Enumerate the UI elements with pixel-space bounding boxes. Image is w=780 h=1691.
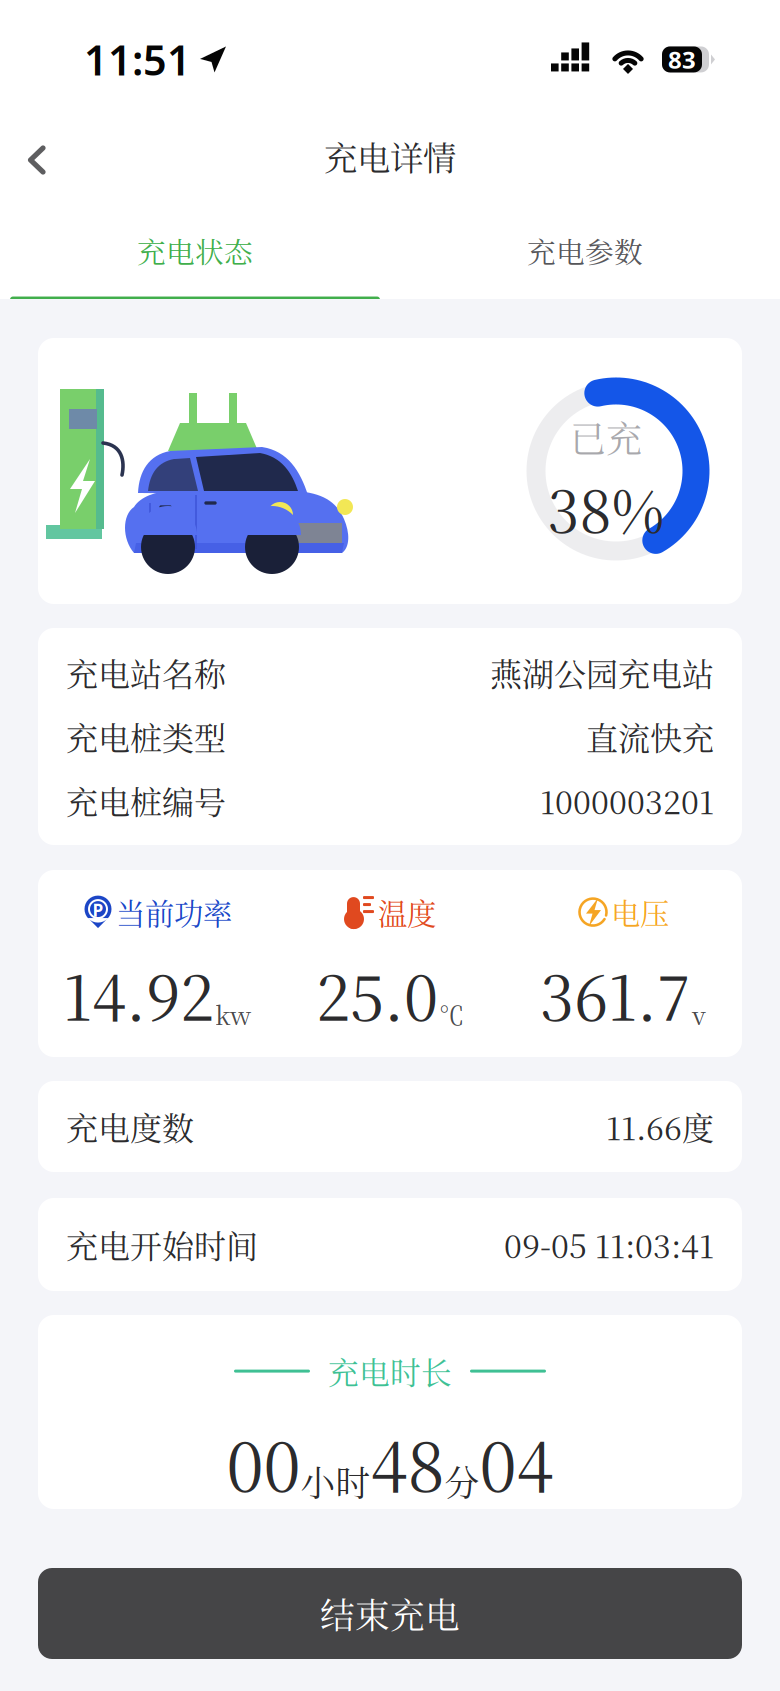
staticText: 结束充电: [320, 1589, 460, 1638]
staticText: 00: [226, 1415, 300, 1511]
staticText: ℃: [439, 996, 464, 1032]
staticText: 充电详情: [324, 132, 456, 180]
staticText: 燕湖公园充电站: [490, 649, 714, 695]
staticText: 温度: [378, 891, 436, 933]
staticText: 25.0: [316, 950, 438, 1038]
staticText: 充电开始时间: [66, 1221, 258, 1267]
button[interactable]: Back: [0, 114, 81, 198]
staticText: 48: [370, 1415, 444, 1511]
staticText: 14.92: [63, 950, 214, 1038]
staticText: 分: [444, 1456, 479, 1506]
button[interactable]: 充电参数: [390, 208, 780, 299]
staticText: 04: [479, 1415, 553, 1511]
staticText: 11.66度: [606, 1103, 714, 1149]
staticText: 83: [668, 43, 696, 75]
button[interactable]: 结束充电: [38, 1568, 742, 1659]
staticText: P: [92, 899, 103, 922]
staticText: 361.7: [540, 950, 691, 1038]
staticText: 直流快充: [586, 713, 714, 759]
staticText: 38%: [547, 467, 664, 549]
staticText: 小时: [300, 1456, 370, 1506]
staticText: 充电时长: [328, 1349, 452, 1393]
staticText: 充电桩编号: [66, 777, 226, 823]
staticText: 充电参数: [527, 230, 643, 271]
staticText: 已充: [570, 411, 642, 463]
staticText: 充电桩类型: [66, 713, 226, 759]
staticText: 电压: [611, 891, 669, 933]
staticText: 1000003201: [540, 777, 714, 823]
staticText: 当前功率: [116, 891, 232, 933]
staticText: v: [692, 996, 706, 1032]
staticText: 充电站名称: [66, 649, 226, 695]
staticText: 充电度数: [66, 1103, 194, 1149]
staticText: 11:51: [84, 32, 191, 87]
staticText: 09-05 11:03:41: [504, 1221, 714, 1267]
staticText: kw: [215, 996, 251, 1032]
staticText: 充电状态: [137, 230, 253, 271]
button[interactable]: 充电状态: [0, 204, 390, 302]
